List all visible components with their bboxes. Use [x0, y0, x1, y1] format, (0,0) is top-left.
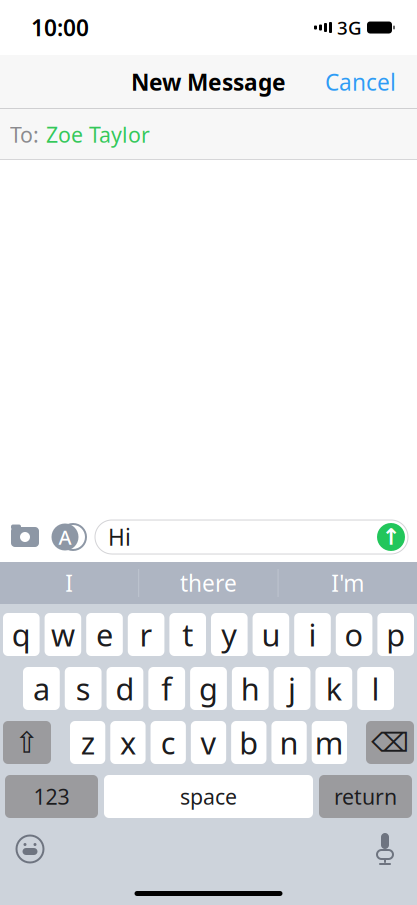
- button[interactable]: j: [274, 667, 310, 710]
- button[interactable]: o: [336, 613, 372, 656]
- button[interactable]: g: [190, 667, 227, 710]
- button[interactable]: Apps: [47, 515, 91, 559]
- button[interactable]: k: [315, 667, 352, 710]
- staticText: v: [200, 722, 216, 763]
- button[interactable]: return: [319, 775, 412, 818]
- staticText: w: [51, 614, 75, 655]
- staticText: 123: [33, 782, 69, 811]
- button[interactable]: x: [110, 721, 146, 764]
- button[interactable]: Cancel: [311, 55, 410, 109]
- staticText: n: [280, 722, 299, 763]
- button[interactable]: v: [191, 721, 226, 764]
- staticText: d: [115, 668, 134, 709]
- button[interactable]: 123: [5, 775, 98, 818]
- button[interactable]: Take photo: [3, 515, 47, 559]
- staticText: m: [315, 722, 344, 763]
- staticText: e: [96, 614, 113, 655]
- button[interactable]: d: [107, 667, 143, 710]
- staticText: p: [386, 614, 405, 655]
- staticText: 3G: [337, 15, 362, 40]
- button[interactable]: e: [86, 613, 123, 656]
- button[interactable]: p: [377, 613, 414, 656]
- staticText: l: [372, 668, 380, 709]
- button[interactable]: h: [232, 667, 269, 710]
- staticText: ⌫: [371, 727, 409, 758]
- button[interactable]: w: [45, 613, 81, 656]
- button[interactable]: there: [139, 562, 278, 604]
- button[interactable]: f: [148, 667, 185, 710]
- button[interactable]: l: [357, 667, 394, 710]
- button[interactable]: Emoji: [8, 829, 52, 869]
- staticText: t: [182, 614, 193, 655]
- button[interactable]: b: [231, 721, 266, 764]
- staticText: return: [334, 782, 397, 811]
- button[interactable]: a: [23, 667, 60, 710]
- staticText: I'm: [331, 568, 364, 598]
- staticText: ↑: [381, 524, 400, 550]
- button[interactable]: r: [128, 613, 164, 656]
- button[interactable]: Dictation: [363, 829, 407, 869]
- staticText: Cancel: [325, 67, 396, 97]
- button[interactable]: c: [151, 721, 186, 764]
- button[interactable]: space: [104, 775, 313, 818]
- button[interactable]: Delete: [366, 721, 414, 764]
- staticText: o: [345, 614, 364, 655]
- staticText: Zoe Taylor: [46, 120, 150, 149]
- staticText: y: [221, 614, 237, 655]
- staticText: j: [288, 668, 296, 709]
- button[interactable]: i: [294, 613, 331, 656]
- button[interactable]: n: [271, 721, 307, 764]
- staticText: r: [140, 614, 153, 655]
- staticText: Hi: [108, 522, 131, 552]
- staticText: s: [76, 668, 91, 709]
- staticText: I: [65, 568, 73, 598]
- button[interactable]: u: [253, 613, 289, 656]
- button[interactable]: y: [211, 613, 248, 656]
- staticText: c: [161, 722, 176, 763]
- button[interactable]: I: [0, 562, 138, 604]
- staticText: x: [120, 722, 136, 763]
- staticText: there: [180, 568, 237, 598]
- staticText: To:: [10, 120, 39, 149]
- staticText: A: [58, 524, 71, 550]
- staticText: i: [308, 614, 316, 655]
- staticText: a: [33, 668, 50, 709]
- staticText: h: [241, 668, 260, 709]
- button[interactable]: Send: [377, 523, 405, 551]
- button[interactable]: z: [70, 721, 105, 764]
- button[interactable]: q: [3, 613, 40, 656]
- staticText: b: [239, 722, 258, 763]
- staticText: g: [199, 668, 218, 709]
- staticText: u: [261, 614, 280, 655]
- staticText: q: [12, 614, 31, 655]
- button[interactable]: Shift: [3, 721, 51, 764]
- staticText: k: [326, 668, 342, 709]
- staticText: New Message: [131, 67, 286, 97]
- button[interactable]: I'm: [279, 562, 417, 604]
- button[interactable]: To:: [0, 109, 417, 160]
- button[interactable]: t: [169, 613, 206, 656]
- staticText: space: [180, 782, 237, 811]
- staticText: ⇧: [14, 726, 39, 759]
- staticText: z: [81, 722, 95, 763]
- staticText: 10:00: [31, 12, 89, 42]
- staticText: f: [161, 668, 172, 709]
- button[interactable]: m: [312, 721, 347, 764]
- button[interactable]: s: [65, 667, 102, 710]
